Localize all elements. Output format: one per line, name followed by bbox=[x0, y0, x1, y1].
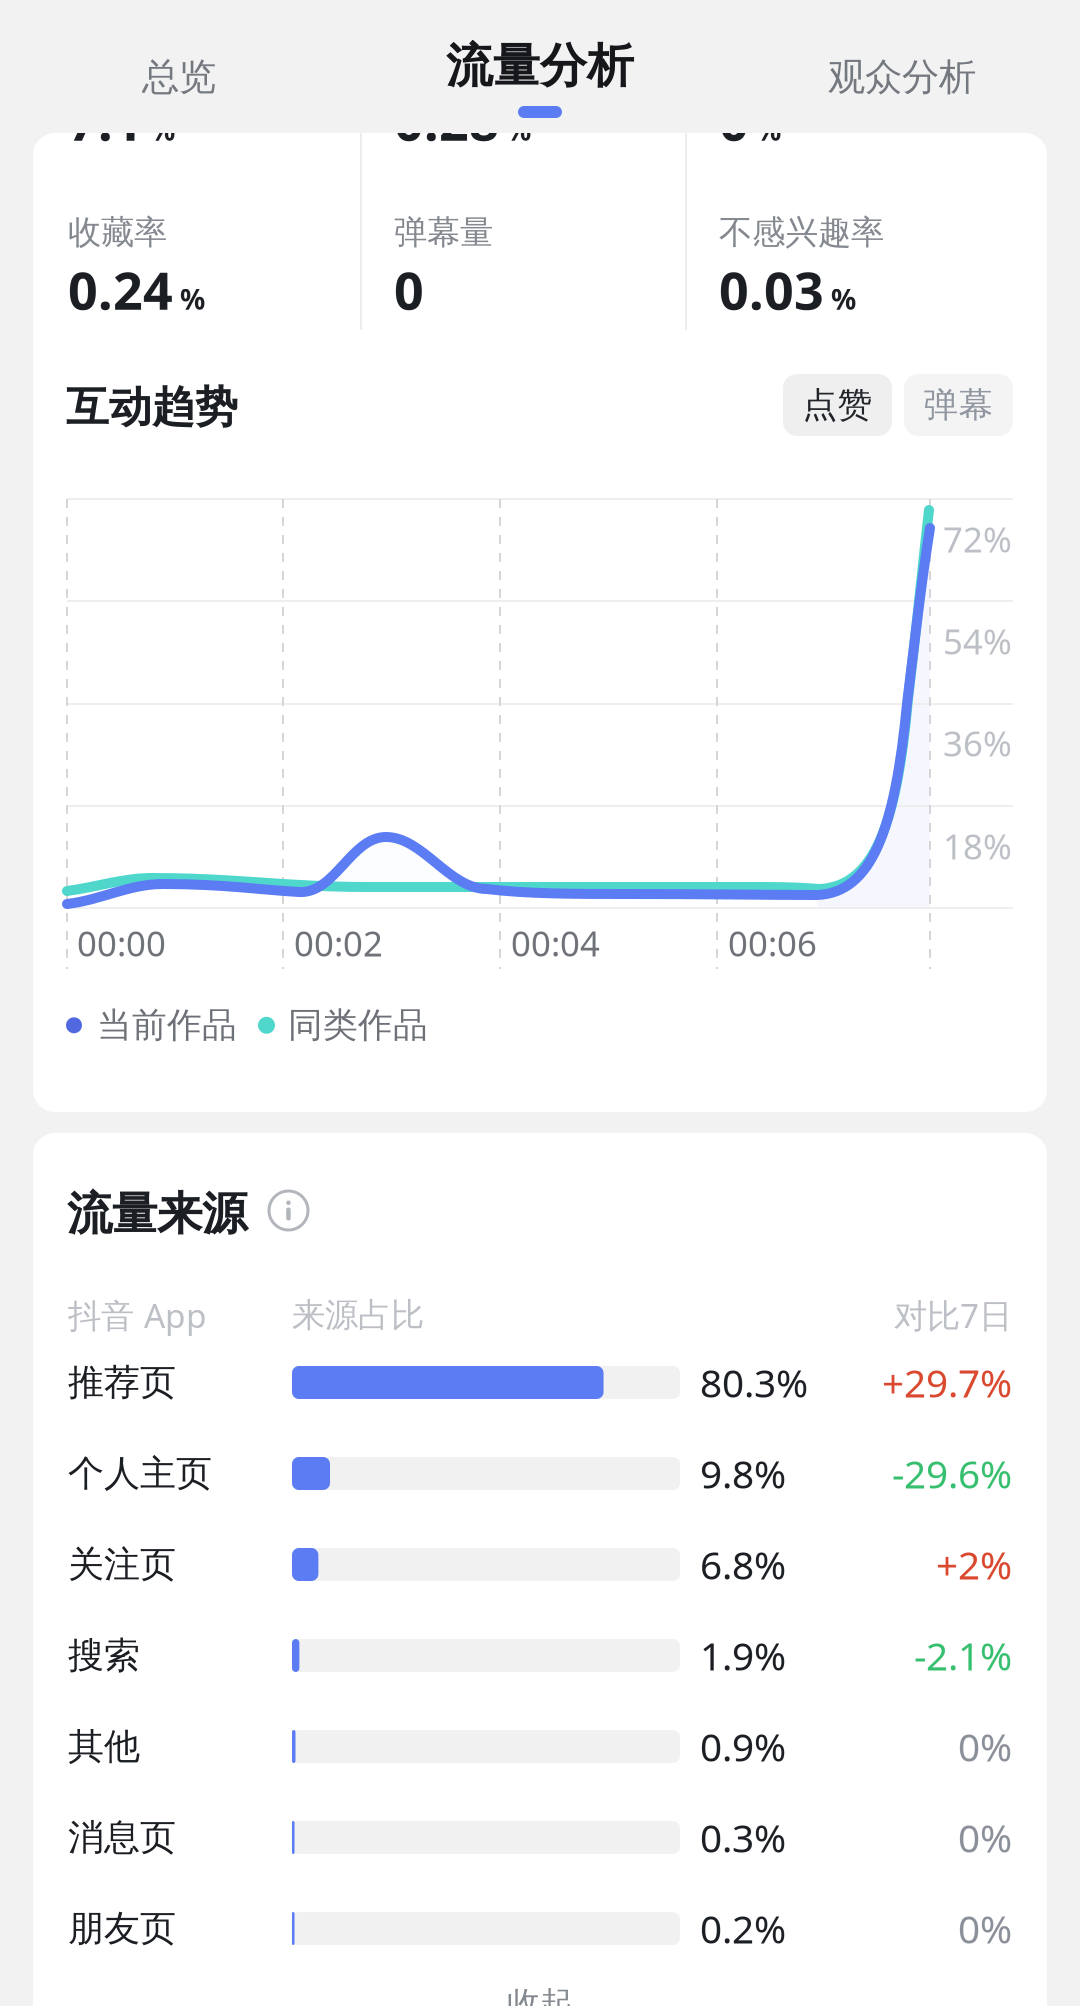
button[interactable]: 点赞 bbox=[783, 374, 892, 436]
staticText: 当前作品 bbox=[97, 1004, 237, 1047]
staticText: 0% bbox=[958, 1903, 1012, 1954]
staticText: 关注页 bbox=[68, 1542, 176, 1587]
staticText: 18% bbox=[943, 823, 1012, 869]
staticText: 互动趋势 bbox=[66, 381, 238, 433]
staticText: 00:02 bbox=[294, 920, 383, 966]
button[interactable]: 总览 bbox=[29, 0, 329, 128]
staticText: 推荐页 bbox=[68, 1360, 176, 1405]
staticText: 72% bbox=[943, 516, 1012, 562]
staticText: 流量分析 bbox=[446, 37, 634, 95]
staticText: 00:04 bbox=[511, 920, 600, 966]
staticText: 0.2% bbox=[700, 1903, 786, 1954]
staticText: -2.1% bbox=[914, 1630, 1012, 1681]
staticText: 6.8% bbox=[700, 1539, 786, 1590]
staticText: 流量来源 bbox=[67, 1186, 247, 1242]
staticText: 点赞 bbox=[802, 384, 872, 426]
staticText: 0 bbox=[719, 86, 749, 155]
staticText: 来源占比 bbox=[292, 1295, 424, 1336]
staticText: 00:00 bbox=[77, 920, 166, 966]
staticText: 收藏率 bbox=[68, 212, 167, 253]
staticText: 1.9% bbox=[700, 1630, 786, 1681]
button[interactable]: 流量分析 bbox=[360, 0, 720, 128]
staticText: 9.8% bbox=[700, 1448, 786, 1499]
staticText: 80.3% bbox=[700, 1357, 808, 1408]
staticText: % bbox=[756, 111, 781, 148]
staticText: 收起 bbox=[507, 1983, 573, 2006]
staticText: 对比7日 bbox=[894, 1293, 1012, 1337]
staticText: 同类作品 bbox=[288, 1004, 428, 1047]
staticText: 其他 bbox=[68, 1724, 140, 1769]
staticText: 0.24 bbox=[68, 255, 173, 324]
staticText: 0.9% bbox=[700, 1721, 786, 1772]
staticText: % bbox=[150, 111, 175, 148]
staticText: 0.03 bbox=[719, 255, 824, 324]
staticText: 观众分析 bbox=[828, 54, 976, 100]
staticText: 不感兴趣率 bbox=[719, 212, 884, 253]
staticText: 0.28 bbox=[394, 86, 499, 155]
staticText: -29.6% bbox=[892, 1448, 1012, 1499]
staticText: % bbox=[180, 280, 205, 317]
staticText: 36% bbox=[943, 720, 1012, 766]
button[interactable]: 流量来源说明 bbox=[269, 1191, 317, 1239]
staticText: % bbox=[506, 111, 531, 148]
staticText: +29.7% bbox=[882, 1357, 1012, 1408]
staticText: 朋友页 bbox=[68, 1906, 176, 1951]
staticText: 弹幕量 bbox=[394, 212, 493, 253]
button[interactable]: 收起 bbox=[68, 1978, 1012, 2006]
staticText: 0.3% bbox=[700, 1812, 786, 1863]
button[interactable]: 观众分析 bbox=[752, 0, 1052, 128]
staticText: 54% bbox=[943, 618, 1012, 664]
staticText: 消息页 bbox=[68, 1815, 176, 1860]
staticText: 搜索 bbox=[68, 1633, 140, 1678]
staticText: +2% bbox=[936, 1539, 1012, 1590]
staticText: 7.1 bbox=[68, 86, 143, 155]
staticText: 00:06 bbox=[728, 920, 817, 966]
staticText: % bbox=[831, 280, 856, 317]
staticText: 总览 bbox=[142, 54, 216, 100]
staticText: 个人主页 bbox=[68, 1451, 212, 1496]
button[interactable]: 弹幕 bbox=[904, 374, 1013, 436]
staticText: 0% bbox=[958, 1812, 1012, 1863]
staticText: 弹幕 bbox=[923, 384, 993, 426]
staticText: 抖音 App bbox=[68, 1293, 207, 1337]
staticText: 0% bbox=[958, 1721, 1012, 1772]
staticText: 0 bbox=[394, 255, 424, 324]
